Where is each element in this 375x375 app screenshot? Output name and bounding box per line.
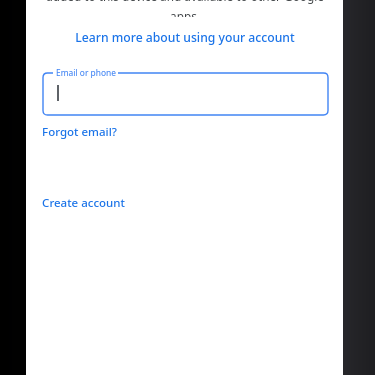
staticText: apps. bbox=[170, 8, 200, 17]
button[interactable]: Create account bbox=[42, 195, 125, 211]
staticText: Create account bbox=[42, 195, 125, 211]
staticText: Learn more about using your account bbox=[75, 29, 295, 46]
staticText: Email or phone bbox=[56, 67, 116, 78]
button[interactable]: Email or phone bbox=[43, 73, 328, 115]
staticText: added to this device and available to ot… bbox=[46, 0, 324, 4]
staticText: Forgot email? bbox=[42, 124, 117, 140]
button[interactable]: Learn more about using your account bbox=[26, 29, 343, 46]
button[interactable]: Forgot email? bbox=[42, 124, 117, 140]
